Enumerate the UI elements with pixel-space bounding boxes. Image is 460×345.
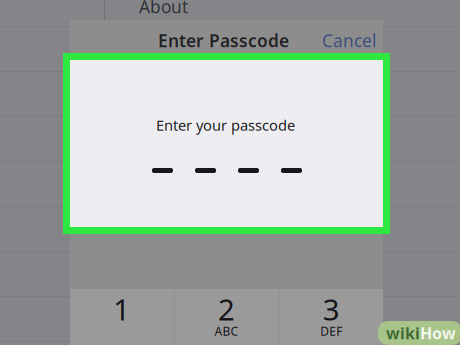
staticText: 2	[218, 289, 235, 328]
staticText: wiki	[386, 322, 420, 344]
staticText: How	[420, 322, 456, 344]
staticText: DEF	[320, 323, 342, 339]
staticText: 3	[323, 289, 340, 328]
staticText: Enter your passcode	[156, 115, 295, 135]
button[interactable]: 1	[70, 289, 174, 345]
staticText: 1	[113, 289, 130, 328]
staticText: About	[139, 0, 188, 18]
staticText: ABC	[214, 323, 238, 339]
button[interactable]: 2	[175, 289, 278, 345]
staticText: Enter Passcode	[158, 29, 289, 52]
button[interactable]: Cancel	[306, 20, 376, 61]
button[interactable]: 3	[279, 289, 383, 345]
staticText: Cancel	[322, 29, 376, 52]
